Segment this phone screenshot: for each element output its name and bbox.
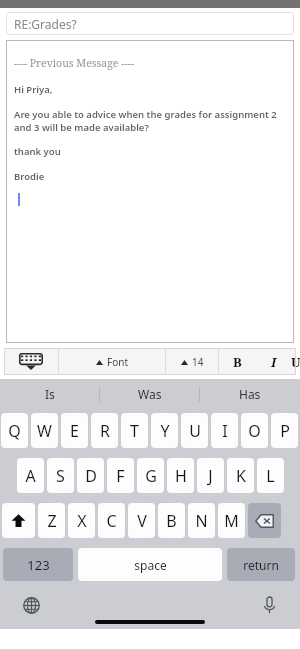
button[interactable]: E [61,413,88,448]
staticText: A [25,465,36,487]
button[interactable]: V [128,503,155,538]
staticText: Are you able to advice when the grades f… [14,108,287,134]
button[interactable]: T [121,413,148,448]
button[interactable]: Shift [2,503,35,538]
staticText: I [271,353,277,371]
staticText: S [56,465,65,487]
button[interactable]: Was [100,379,199,409]
button[interactable]: 14 [166,348,218,375]
staticText: return [243,557,279,573]
button[interactable]: Font [59,348,165,375]
staticText: K [236,465,246,487]
button[interactable]: Z [38,503,65,538]
button[interactable]: G [137,458,164,493]
button[interactable]: Has [200,379,299,409]
staticText: W [37,420,52,442]
staticText: Font [107,355,129,369]
staticText: ---- Previous Message ---- [14,56,135,70]
button[interactable]: Dictate [238,590,300,620]
staticText: D [85,465,97,487]
button[interactable]: Hide keyboard [4,348,58,375]
staticText: O [248,420,261,442]
button[interactable]: J [197,458,224,493]
staticText: G [145,465,157,487]
button[interactable]: X [68,503,95,538]
staticText: I [222,420,228,442]
button[interactable]: H [167,458,194,493]
button[interactable]: M [218,503,245,538]
button[interactable]: L [257,458,284,493]
staticText: M [224,510,239,532]
staticText: thank you [14,145,61,158]
staticText: Has [239,386,261,402]
button[interactable]: N [188,503,215,538]
staticText: B [233,353,242,371]
button[interactable]: return [227,548,295,581]
button[interactable]: P [271,413,298,448]
button[interactable]: Is [0,379,99,409]
button[interactable]: R [91,413,118,448]
button[interactable]: B [219,348,256,375]
staticText: Q [8,420,21,442]
button[interactable]: space [78,548,222,581]
button[interactable]: Y [151,413,178,448]
staticText: U [291,353,296,371]
button[interactable]: Q [1,413,28,448]
staticText: X [77,510,87,532]
staticText: J [208,465,213,487]
button[interactable]: I [256,348,291,375]
staticText: H [175,465,187,487]
staticText: Brodie [14,170,45,183]
button[interactable]: O [241,413,268,448]
staticText: 123 [27,556,50,574]
staticText: V [137,510,147,532]
staticText: Y [160,420,170,442]
button[interactable]: A [17,458,44,493]
button[interactable]: ---- Previous Message ---- [6,40,294,343]
button[interactable]: RE:Grades? [6,12,294,35]
staticText: N [195,510,208,532]
button[interactable]: S [47,458,74,493]
button[interactable]: D [77,458,104,493]
staticText: P [280,420,290,442]
staticText: B [166,510,177,532]
staticText: E [70,420,79,442]
staticText: Is [45,386,55,402]
button[interactable]: B [158,503,185,538]
staticText: Z [47,510,57,532]
button[interactable]: Backspace [248,503,281,538]
button[interactable]: I [211,413,238,448]
staticText: L [266,465,275,487]
button[interactable]: K [227,458,254,493]
staticText: RE:Grades? [14,16,77,32]
staticText: T [130,420,139,442]
button[interactable]: F [107,458,134,493]
button[interactable]: U [181,413,208,448]
button[interactable]: C [98,503,125,538]
button[interactable]: W [31,413,58,448]
button[interactable]: Change keyboard language [0,590,62,620]
staticText: Hi Priya, [14,83,53,96]
button[interactable]: 123 [3,548,73,581]
staticText: 14 [192,355,204,369]
staticText: space [134,557,167,573]
button[interactable]: U [291,348,296,375]
staticText: U [189,420,201,442]
staticText: R [100,420,110,442]
staticText: Was [138,386,162,402]
staticText: F [116,465,125,487]
staticText: C [106,510,117,532]
